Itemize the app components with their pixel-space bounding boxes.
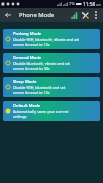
staticText: Phone Mode — [19, 11, 55, 19]
staticText: Sleep Mode — [13, 79, 37, 85]
button[interactable]: Prolong Mode — [3, 29, 100, 49]
staticText: Disable WiFi, bluetooth, vibrate and set — [13, 37, 79, 42]
staticText: Automatically saves your current — [13, 109, 69, 114]
button[interactable]: Tools — [80, 8, 91, 22]
staticText: am — [96, 2, 102, 7]
staticText: screen timeout to 15s — [13, 42, 50, 47]
staticText: Disable bluetooth, vibrate and set — [13, 61, 70, 66]
button[interactable]: General Mode — [3, 53, 100, 73]
staticText: screen timeout to 15s — [13, 90, 50, 95]
button[interactable]: Statistics — [69, 8, 80, 22]
staticText: 11:58 — [83, 1, 96, 8]
staticText: screen timeout to 30s — [13, 66, 50, 71]
button[interactable]: Default Mode — [3, 101, 100, 121]
staticText: 7% — [69, 1, 75, 7]
staticText: Default Mode — [13, 103, 41, 109]
button[interactable]: More options — [91, 8, 100, 22]
button[interactable]: Navigate up — [0, 8, 15, 22]
staticText: General Mode — [13, 55, 42, 61]
staticText: Prolong Mode — [13, 31, 42, 37]
staticText: Disable WiFi, bluetooth and set — [13, 85, 66, 90]
button[interactable]: Sleep Mode — [3, 77, 100, 97]
staticText: settings — [13, 114, 27, 119]
